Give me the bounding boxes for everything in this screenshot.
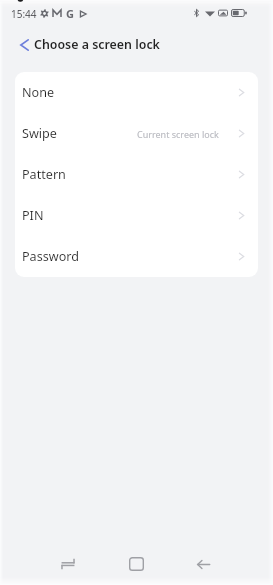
button[interactable]: Back (183, 544, 223, 584)
staticText: PIN (22, 207, 44, 224)
staticText: Choose a screen lock (34, 36, 160, 53)
button[interactable]: Swipe (15, 113, 258, 154)
button[interactable]: PIN (15, 195, 258, 236)
staticText: Password (22, 248, 79, 265)
button[interactable]: Back (11, 28, 37, 62)
staticText: 15:44 (11, 7, 37, 21)
button[interactable]: Pattern (15, 154, 258, 195)
staticText: G (66, 6, 74, 21)
staticText: Current screen lock (137, 128, 219, 140)
button[interactable]: Home (116, 544, 156, 584)
button[interactable]: Recents (48, 544, 88, 584)
button[interactable]: None (15, 72, 258, 113)
staticText: None (22, 84, 55, 101)
staticText: Pattern (22, 166, 66, 183)
staticText: Swipe (22, 125, 57, 142)
button[interactable]: Password (15, 236, 258, 277)
